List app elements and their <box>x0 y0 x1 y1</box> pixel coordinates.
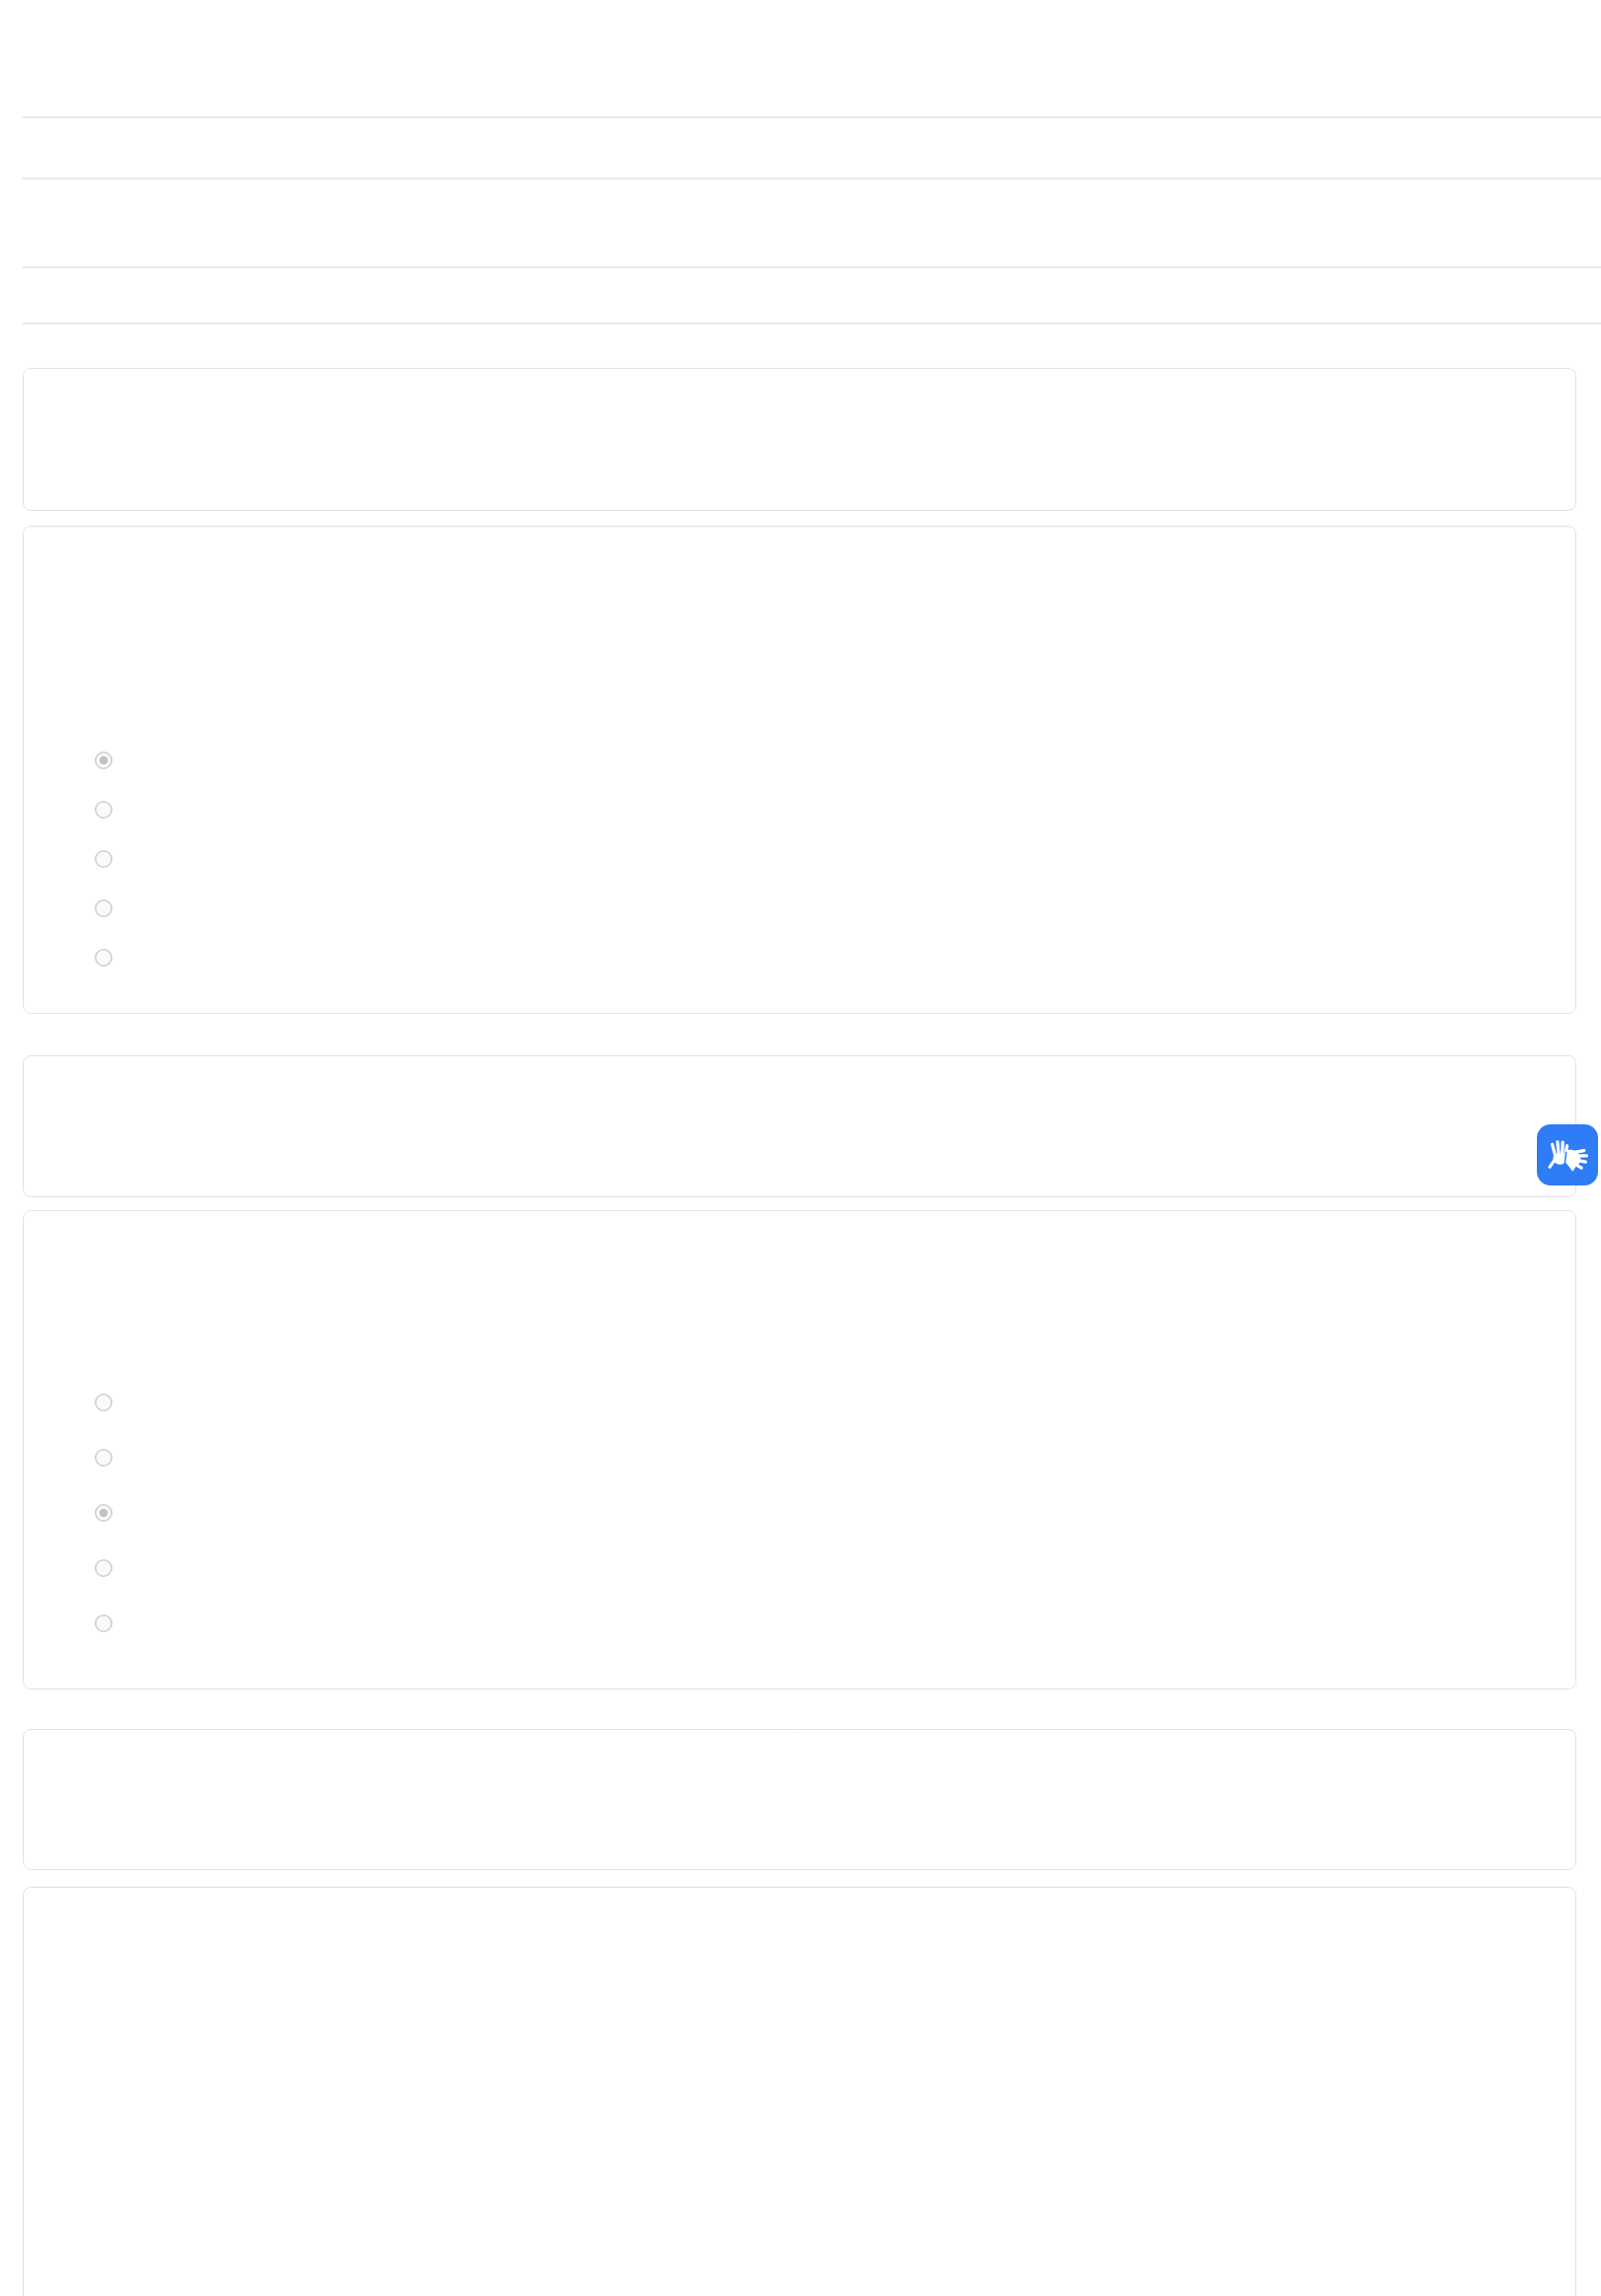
button[interactable] <box>23 1729 1576 1870</box>
button[interactable] <box>23 1055 1576 1197</box>
button[interactable] <box>23 368 1576 511</box>
button[interactable]: Sign language interpretation <box>1537 1124 1598 1185</box>
